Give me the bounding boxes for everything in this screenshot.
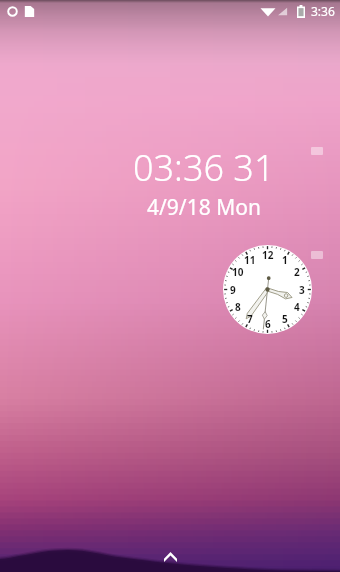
staticText: 9 [230, 283, 236, 297]
staticText: 4/9/18 Mon [147, 193, 261, 222]
button[interactable]: Open app drawer [157, 544, 183, 570]
staticText: 4 [294, 300, 300, 314]
staticText: 3 [299, 283, 305, 297]
staticText: 10 [232, 265, 244, 279]
staticText: 11 [244, 253, 256, 267]
button[interactable]: 03:36 31 [133, 143, 275, 222]
staticText: 12 [262, 248, 274, 262]
button[interactable]: Analog clock [223, 245, 312, 334]
staticText: 6 [265, 317, 271, 331]
staticText: 1 [282, 253, 288, 267]
staticText: 7 [247, 312, 253, 326]
staticText: 03:36 31 [133, 143, 275, 192]
staticText: 3:36 [311, 3, 335, 19]
staticText: 8 [235, 300, 241, 314]
staticText: 5 [282, 312, 288, 326]
staticText: 2 [294, 265, 300, 279]
